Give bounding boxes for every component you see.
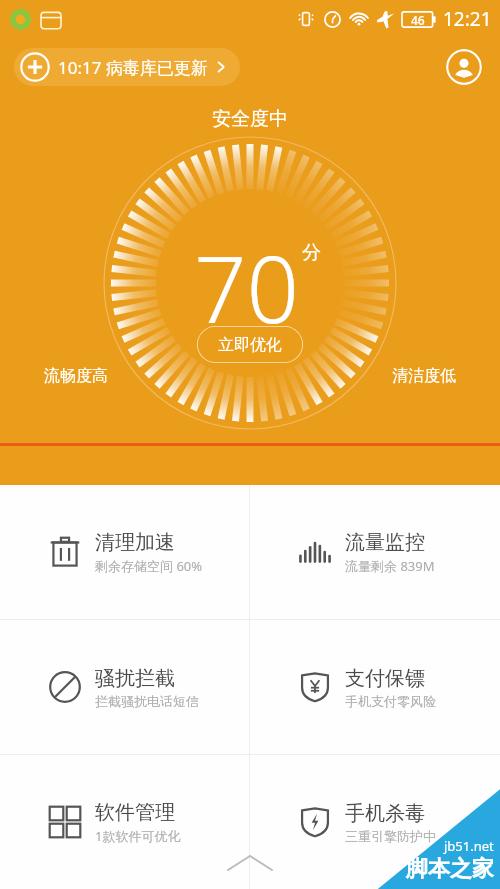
staticText: 手机杀毒 <box>345 801 425 826</box>
staticText: 12:21 <box>443 6 492 32</box>
staticText: 立即优化 <box>218 335 282 355</box>
staticText: 流量剩余 839M <box>345 557 435 575</box>
staticText: 脚本之家 <box>406 855 494 883</box>
button[interactable]: 软件管理 <box>0 755 249 889</box>
staticText: 支付保镖 <box>345 666 425 691</box>
staticText: 清理加速 <box>95 530 175 555</box>
staticText: 安全度中 <box>212 107 288 131</box>
staticText: 剩余存储空间 60% <box>95 557 203 575</box>
button[interactable]: 立即优化 <box>197 326 303 363</box>
staticText: 1款软件可优化 <box>95 827 181 845</box>
button[interactable]: 骚扰拦截 <box>0 620 249 754</box>
staticText: 清洁度低 <box>392 366 456 386</box>
staticText: 46 <box>411 12 425 28</box>
staticText: 三重引擎防护中 <box>345 828 436 844</box>
staticText: 分 <box>302 241 321 265</box>
button[interactable]: 清理加速 <box>0 485 249 619</box>
staticText: jb51.net <box>444 837 494 855</box>
button[interactable]: 10:17 病毒库已更新 <box>14 48 240 86</box>
button[interactable]: Account <box>446 49 482 85</box>
staticText: 流量监控 <box>345 530 425 555</box>
button[interactable]: 支付保镖 <box>250 620 500 754</box>
staticText: 10:17 病毒库已更新 <box>58 56 208 79</box>
staticText: 骚扰拦截 <box>95 666 175 691</box>
staticText: 手机支付零风险 <box>345 693 436 709</box>
button[interactable]: Expand <box>220 851 280 875</box>
button[interactable]: 手机杀毒 <box>250 755 500 889</box>
staticText: 软件管理 <box>95 800 175 825</box>
staticText: 拦截骚扰电话短信 <box>95 693 199 709</box>
staticText: 70 <box>194 225 300 350</box>
button[interactable]: 流量监控 <box>250 485 500 619</box>
staticText: 流畅度高 <box>44 366 108 386</box>
